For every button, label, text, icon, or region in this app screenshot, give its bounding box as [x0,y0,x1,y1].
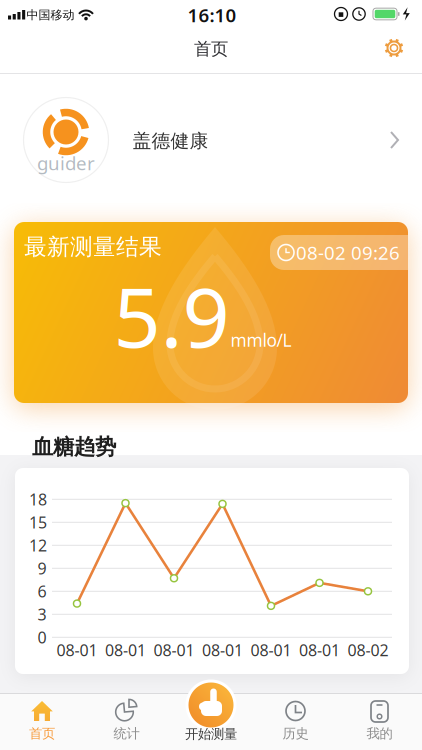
staticText: 9 [37,558,46,579]
staticText: 5.9 [113,261,229,370]
staticText: 中国移动 [26,8,74,22]
button[interactable]: 设置 [372,26,416,70]
staticText: 0 [37,627,46,648]
button[interactable]: 我的 [338,693,422,750]
button[interactable]: 开始测量 [169,676,253,750]
button[interactable]: 历史 [253,693,337,750]
staticText: 08-01 [56,639,97,661]
staticText: 08-02 [347,639,388,661]
button[interactable]: guider [0,75,422,222]
staticText: 开始测量 [185,726,237,742]
staticText: 我的 [366,725,392,742]
staticText: 3 [37,604,46,625]
staticText: 历史 [282,725,308,742]
staticText: 08-01 [105,639,146,661]
staticText: 12 [29,535,47,556]
staticText: 最新测量结果 [24,233,162,261]
staticText: 08-01 [202,639,243,661]
staticText: 首页 [194,38,228,60]
staticText: 统计 [113,725,139,742]
staticText: 08-02 09:26 [296,240,400,265]
button[interactable]: 统计 [84,693,168,750]
staticText: 08-01 [250,639,291,661]
staticText: 15 [29,512,47,533]
staticText: 血糖趋势 [32,434,116,460]
button[interactable]: 首页 [0,693,84,750]
staticText: 16:10 [187,3,236,27]
staticText: 08-01 [299,639,340,661]
staticText: mmlo/L [230,328,291,351]
staticText: guider [37,151,95,175]
staticText: 18 [29,489,47,510]
staticText: 盖德健康 [132,129,208,152]
staticText: 6 [37,581,46,602]
staticText: 08-01 [153,639,194,661]
staticText: 首页 [29,725,55,742]
